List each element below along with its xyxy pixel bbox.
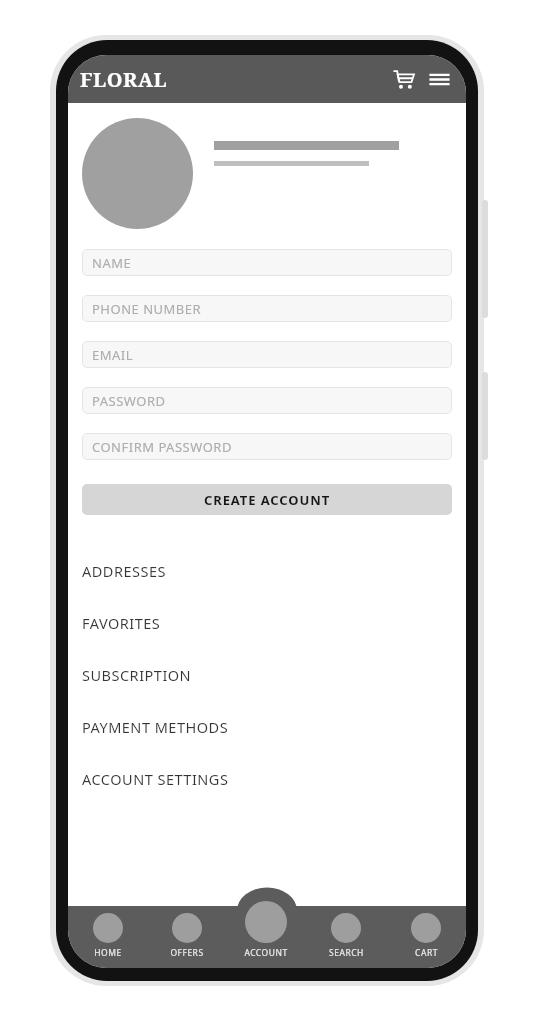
- staticText: EMAIL: [92, 346, 134, 364]
- button[interactable]: FAVORITES: [82, 597, 452, 649]
- staticText: PHONE NUMBER: [92, 300, 202, 318]
- button[interactable]: CREATE ACCOUNT: [82, 484, 452, 515]
- button[interactable]: ACCOUNT SETTINGS: [82, 753, 452, 805]
- staticText: ADDRESSES: [82, 561, 166, 581]
- button[interactable]: PAYMENT METHODS: [82, 701, 452, 753]
- button[interactable]: HOME: [68, 894, 147, 968]
- button[interactable]: ADDRESSES: [82, 545, 452, 597]
- button[interactable]: ACCOUNT: [226, 894, 306, 968]
- button[interactable]: OFFERS: [147, 894, 226, 968]
- staticText: CART: [415, 947, 438, 959]
- button[interactable]: CONFIRM PASSWORD: [82, 433, 452, 460]
- button[interactable]: SUBSCRIPTION: [82, 649, 452, 701]
- staticText: OFFERS: [170, 947, 204, 959]
- staticText: HOME: [94, 947, 122, 959]
- button[interactable]: EMAIL: [82, 341, 452, 368]
- staticText: CREATE ACCOUNT: [204, 491, 331, 509]
- staticText: NAME: [92, 254, 132, 272]
- button[interactable]: NAME: [82, 249, 452, 276]
- button[interactable]: Cart: [388, 64, 418, 94]
- staticText: CONFIRM PASSWORD: [92, 438, 232, 456]
- staticText: PASSWORD: [92, 392, 166, 410]
- button[interactable]: SEARCH: [306, 894, 386, 968]
- button[interactable]: CART: [386, 894, 466, 968]
- staticText: SUBSCRIPTION: [82, 665, 192, 685]
- staticText: PAYMENT METHODS: [82, 717, 229, 737]
- button[interactable]: PHONE NUMBER: [82, 295, 452, 322]
- staticText: FLORAL: [80, 66, 168, 93]
- staticText: ACCOUNT: [244, 947, 288, 959]
- staticText: FAVORITES: [82, 613, 161, 633]
- staticText: ACCOUNT SETTINGS: [82, 769, 229, 789]
- button[interactable]: Menu: [424, 64, 454, 94]
- staticText: SEARCH: [329, 947, 364, 959]
- button[interactable]: PASSWORD: [82, 387, 452, 414]
